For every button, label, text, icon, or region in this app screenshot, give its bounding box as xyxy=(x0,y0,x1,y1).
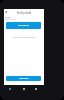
staticText: Didn't get a code? Resend xyxy=(4,36,44,38)
staticText: Verify email xyxy=(4,11,44,15)
staticText: a@mail.com xyxy=(5,18,16,20)
button[interactable]: NEXT STEP xyxy=(6,76,41,81)
button[interactable]: CONTINUE xyxy=(6,22,41,29)
staticText: NEXT STEP xyxy=(19,77,29,80)
staticText: CONTINUE xyxy=(18,24,29,27)
button[interactable]: Back xyxy=(3,9,8,14)
staticText: Email xyxy=(5,16,11,19)
